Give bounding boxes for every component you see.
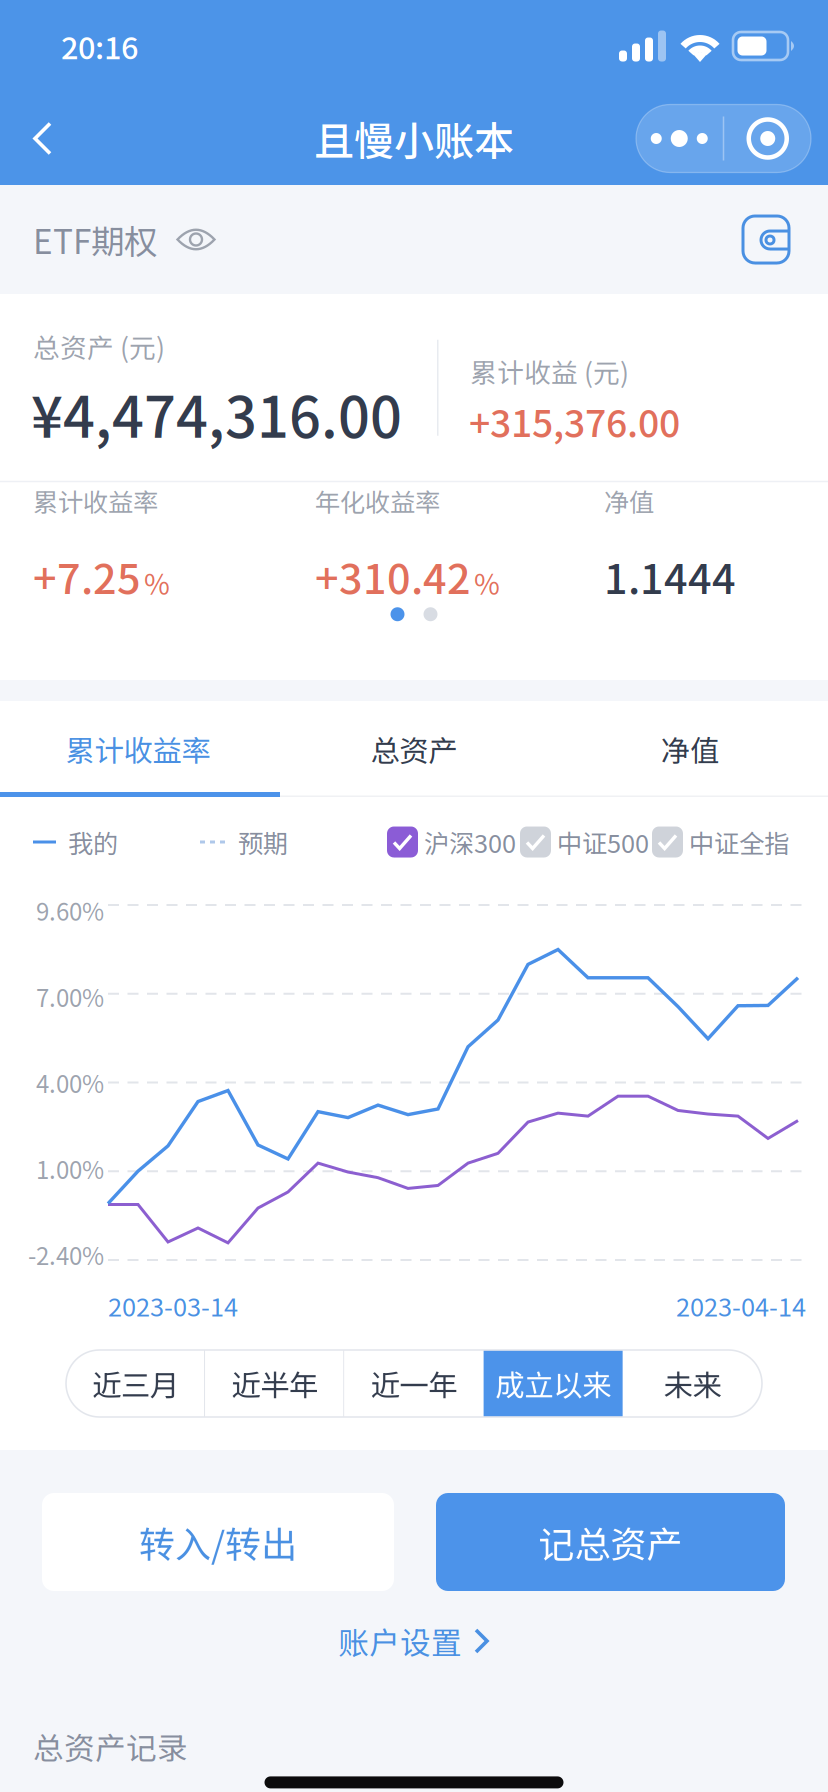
button[interactable]: 账户设置 <box>338 1605 490 1677</box>
button[interactable]: 转入/转出 <box>42 1493 394 1591</box>
staticText: 4.00% <box>36 1065 104 1100</box>
staticText: 20:16 <box>61 24 138 68</box>
staticText: 净值 <box>661 728 719 770</box>
button[interactable]: 未来 <box>623 1350 762 1417</box>
staticText: 总资产 (元) <box>33 327 165 365</box>
button[interactable]: 中证500 <box>520 817 649 867</box>
staticText: 总资产记录 <box>33 1724 188 1768</box>
staticText: 净值 <box>604 482 654 519</box>
staticText: 我的 <box>68 824 118 860</box>
staticText: -2.40% <box>28 1237 104 1272</box>
button[interactable]: More options and close <box>636 104 811 172</box>
staticText: ¥4,474,316.00 <box>31 373 402 454</box>
staticText: % <box>144 562 170 603</box>
button[interactable]: 近半年 <box>205 1350 344 1417</box>
button[interactable]: 总资产 <box>276 701 552 797</box>
staticText: 7.00% <box>36 979 104 1014</box>
button[interactable]: 近三月 <box>66 1350 205 1417</box>
button[interactable]: 净值 <box>552 701 828 797</box>
staticText: 总资产 <box>370 728 457 770</box>
button[interactable]: 近一年 <box>344 1350 484 1417</box>
staticText: 转入/转出 <box>139 1516 297 1568</box>
staticText: ETF期权 <box>33 215 157 264</box>
button[interactable]: 记总资产 <box>436 1493 785 1591</box>
staticText: 记总资产 <box>538 1516 682 1568</box>
staticText: 1.00% <box>36 1151 104 1186</box>
staticText: 沪深300 <box>424 824 516 860</box>
staticText: 中证全指 <box>689 824 789 860</box>
button[interactable]: 累计收益率 <box>0 701 276 797</box>
staticText: +315,376.00 <box>469 394 680 448</box>
staticText: 1.1444 <box>604 546 736 606</box>
button[interactable]: ETF期权 <box>33 203 216 275</box>
staticText: 近半年 <box>231 1362 318 1405</box>
staticText: 累计收益 (元) <box>470 352 629 390</box>
staticText: 未来 <box>663 1362 721 1405</box>
staticText: +310.42 <box>315 546 471 606</box>
staticText: 成立以来 <box>495 1362 611 1405</box>
button[interactable]: 沪深300 <box>387 817 516 867</box>
staticText: 累计收益率 <box>33 482 158 519</box>
button[interactable]: Wallet <box>731 203 803 275</box>
staticText: +7.25 <box>33 546 141 606</box>
button[interactable]: 中证全指 <box>652 817 789 867</box>
staticText: 且慢小账本 <box>314 109 514 167</box>
staticText: 账户设置 <box>338 1619 462 1663</box>
staticText: 2023-03-14 <box>108 1287 238 1324</box>
staticText: 年化收益率 <box>315 482 440 519</box>
button[interactable]: 成立以来 <box>484 1350 623 1417</box>
staticText: 近三月 <box>92 1362 179 1405</box>
staticText: 预期 <box>238 824 288 860</box>
staticText: 2023-04-14 <box>676 1287 806 1324</box>
staticText: 中证500 <box>557 824 649 860</box>
staticText: 累计收益率 <box>65 728 210 770</box>
staticText: 近一年 <box>370 1362 457 1405</box>
staticText: 9.60% <box>36 893 104 928</box>
staticText: % <box>474 562 500 603</box>
button[interactable]: Back <box>0 92 86 185</box>
